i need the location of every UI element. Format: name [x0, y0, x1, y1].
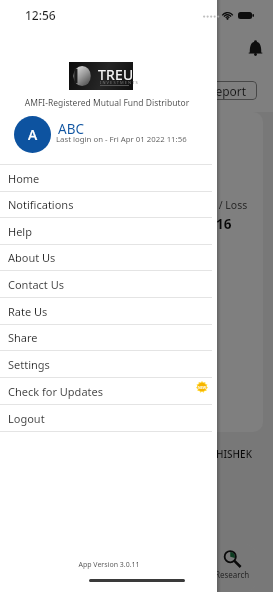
button[interactable]: Notifications — [247, 39, 264, 56]
staticText: Notifications — [8, 197, 74, 212]
button[interactable]: Contact Us — [0, 271, 217, 297]
button[interactable]: Check for Updates — [0, 378, 217, 404]
button[interactable]: Home — [0, 165, 217, 191]
staticText: ABHISHEK — [203, 447, 252, 461]
button[interactable]: Report — [198, 81, 257, 100]
staticText: TREU — [98, 65, 134, 84]
button[interactable]: A — [0, 111, 217, 157]
staticText: INVESTMENTS — [100, 80, 139, 85]
staticText: Logout — [8, 411, 45, 426]
staticText: About Us — [8, 250, 56, 265]
staticText: App Version 3.0.11 — [2, 560, 216, 570]
button[interactable]: Rate Us — [0, 298, 217, 324]
staticText: Report — [208, 83, 247, 99]
staticText: NEW — [198, 385, 207, 390]
staticText: Share — [8, 330, 38, 345]
staticText: Last login on - Fri Apr 01 2022 11:56 — [56, 134, 187, 145]
button[interactable]: Research — [209, 547, 255, 580]
button[interactable]: Help — [0, 218, 217, 244]
staticText: Help — [8, 224, 32, 239]
staticText: ABC — [58, 120, 84, 138]
button[interactable]: Notifications — [0, 192, 217, 217]
staticText: 12:56 — [25, 7, 56, 23]
staticText: Rate Us — [8, 304, 48, 319]
staticText: Research — [215, 569, 250, 580]
button[interactable]: Logout — [0, 405, 217, 431]
staticText: Check for Updates — [8, 384, 103, 399]
button[interactable]: About Us — [0, 245, 217, 270]
staticText: Contact Us — [8, 277, 64, 292]
staticText: Profit / Loss — [189, 198, 248, 212]
staticText: 15,016 — [189, 215, 232, 233]
button[interactable]: Share — [0, 325, 217, 350]
staticText: A — [28, 125, 38, 144]
staticText: Settings — [8, 357, 50, 372]
button[interactable]: Settings — [0, 351, 217, 377]
staticText: Home — [8, 171, 40, 186]
staticText: AMFI-Registered Mutual Fund Distributor — [0, 97, 214, 109]
